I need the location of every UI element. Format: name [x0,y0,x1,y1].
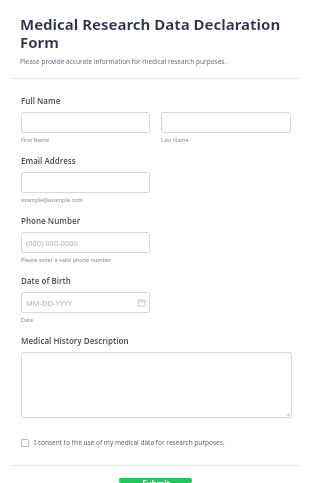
staticText: Please provide accurate information for … [20,57,227,66]
staticText: I consent to the use of my medical data … [34,438,225,447]
button[interactable] [21,112,150,133]
staticText: Please enter a valid phone number. [21,256,112,263]
button[interactable] [21,172,150,193]
button[interactable]: MM-DD-YYYY [21,292,150,313]
button[interactable]: (000) 000-0000 [21,232,150,253]
staticText: Medical Research Data Declaration Form [20,14,298,53]
staticText: Phone Number [21,215,81,226]
staticText: Date [21,316,34,323]
staticText: Submit [142,478,170,483]
button[interactable]: I consent to the use of my medical data … [21,438,292,447]
staticText: example@example.com [21,196,83,203]
staticText: Medical History Description [21,335,129,346]
staticText: First Name [21,136,50,143]
staticText: Date of Birth [21,275,71,286]
button[interactable] [161,112,291,133]
staticText: (000) 000-0000 [26,238,78,248]
staticText: Last Name [161,136,189,143]
staticText: Full Name [21,95,61,106]
staticText: Email Address [21,155,76,166]
staticText: MM-DD-YYYY [26,298,73,308]
button[interactable]: Submit [119,478,192,483]
button[interactable] [21,352,292,418]
